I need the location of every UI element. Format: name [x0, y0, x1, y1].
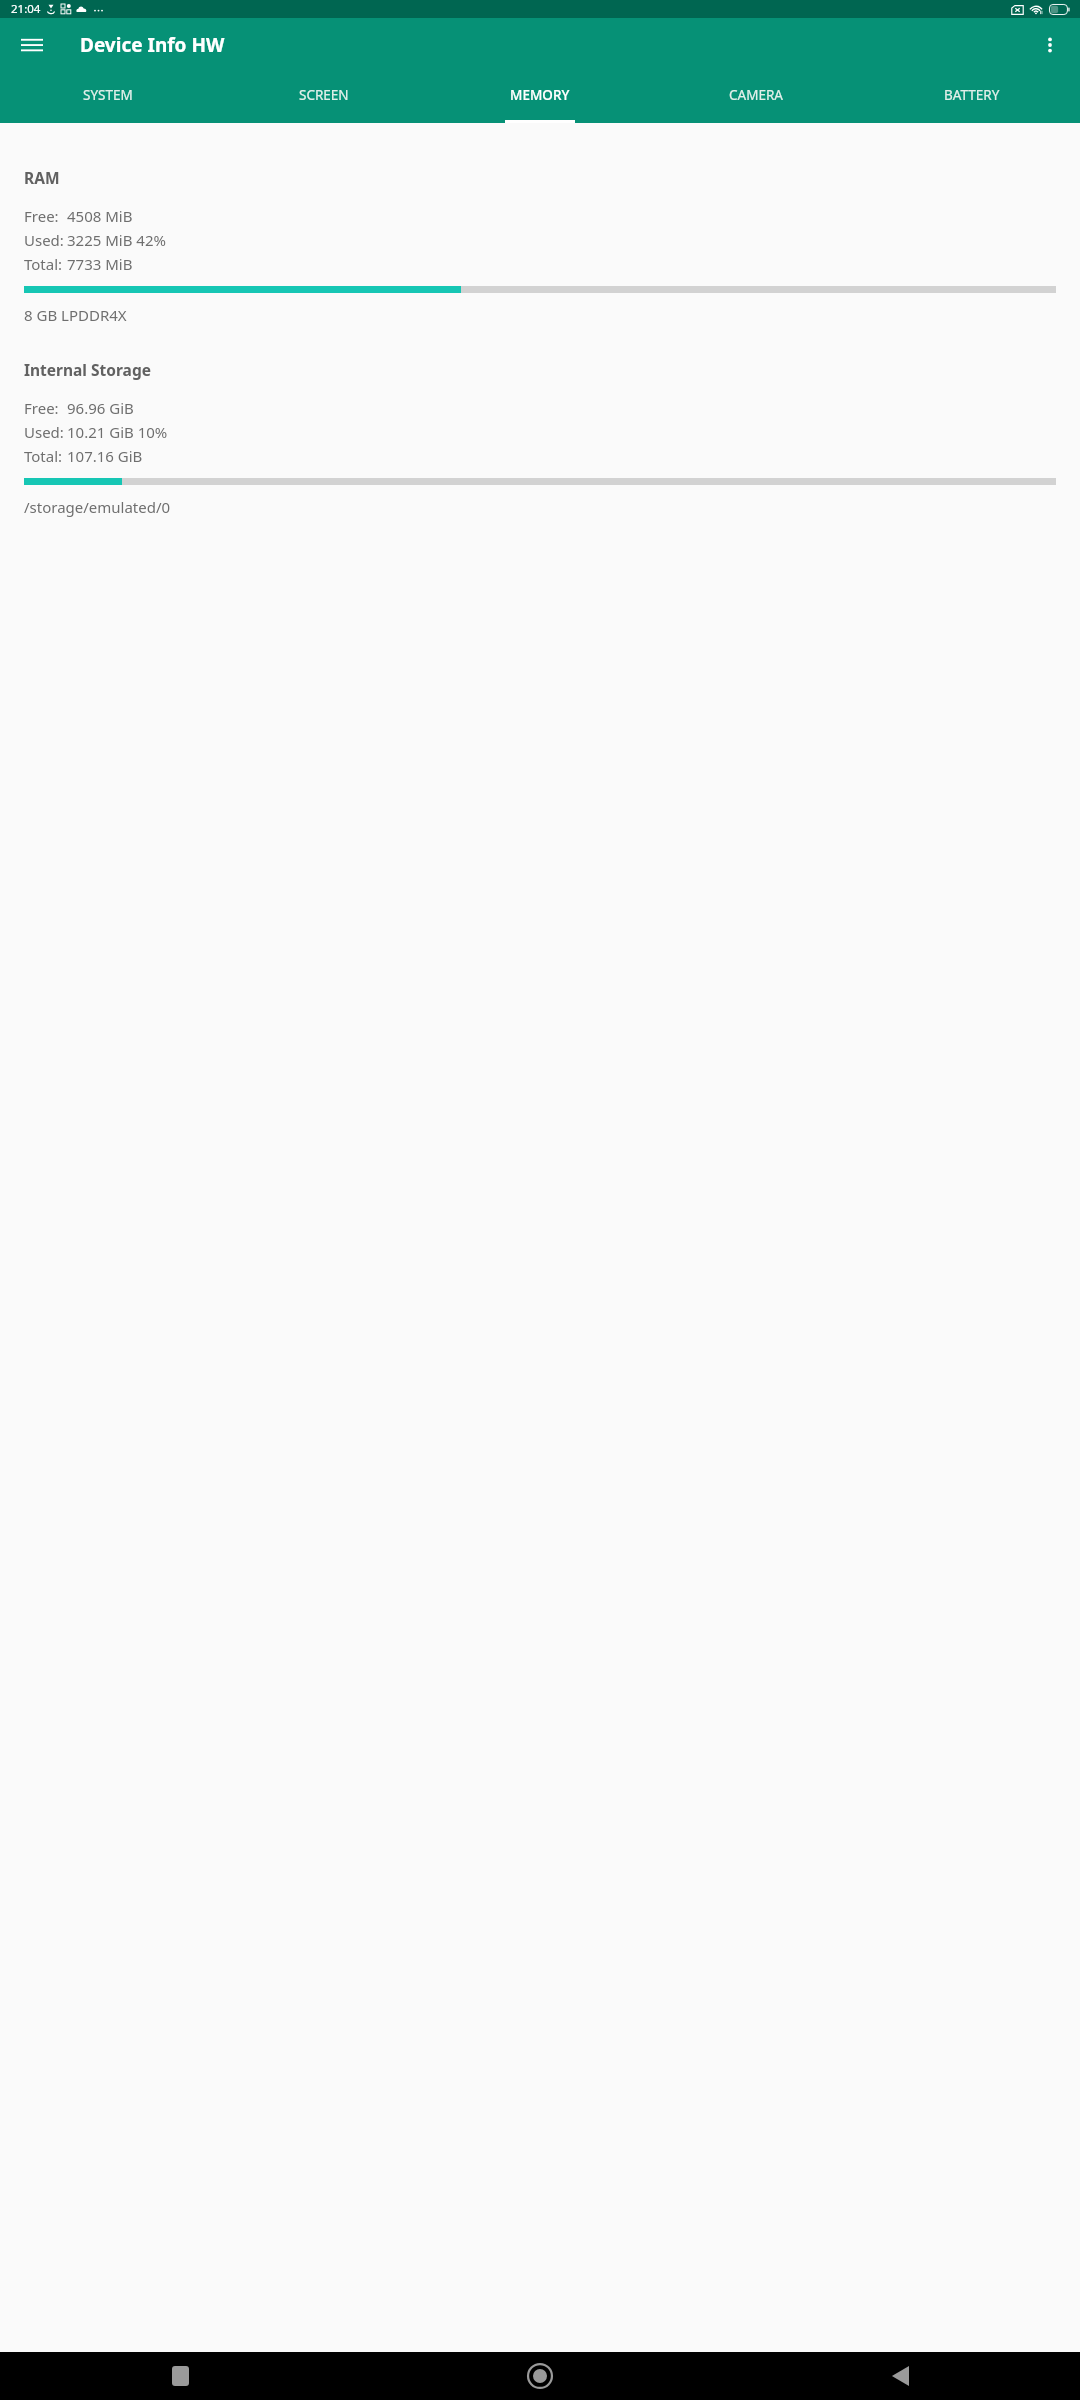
staticText: BATTERY — [944, 86, 1000, 104]
staticText: 10.21 GiB 10% — [67, 422, 168, 442]
button[interactable]: SYSTEM — [0, 71, 216, 123]
button[interactable]: Back — [720, 2352, 1080, 2400]
button[interactable]: MEMORY — [432, 71, 648, 123]
staticText: 96.96 GiB — [67, 398, 134, 418]
button[interactable]: CAMERA — [648, 71, 864, 123]
staticText: 107.16 GiB — [67, 446, 143, 466]
staticText: Free: — [24, 206, 59, 226]
staticText: Free: — [24, 398, 59, 418]
button[interactable]: SCREEN — [216, 71, 432, 123]
staticText: 8 GB LPDDR4X — [24, 305, 127, 325]
staticText: Total: — [24, 254, 63, 274]
staticText: 21:04 — [11, 1, 41, 17]
staticText: 3225 MiB 42% — [67, 230, 166, 250]
staticText: SCREEN — [299, 86, 349, 104]
staticText: Internal Storage — [24, 359, 151, 380]
staticText: Used: — [24, 422, 64, 442]
staticText: 7733 MiB — [67, 254, 133, 274]
staticText: CAMERA — [729, 86, 783, 104]
button[interactable]: Home — [360, 2352, 720, 2400]
staticText: MEMORY — [510, 86, 570, 104]
staticText: Used: — [24, 230, 64, 250]
staticText: RAM — [24, 167, 60, 188]
staticText: 4508 MiB — [67, 206, 133, 226]
staticText: SYSTEM — [83, 86, 133, 104]
staticText: Total: — [24, 446, 63, 466]
staticText: /storage/emulated/0 — [24, 497, 171, 517]
staticText: Device Info HW — [80, 32, 225, 58]
button[interactable]: BATTERY — [864, 71, 1080, 123]
button[interactable]: Open navigation drawer — [8, 21, 56, 69]
button[interactable]: Recent apps — [0, 2352, 360, 2400]
button[interactable]: More options — [1026, 21, 1074, 69]
